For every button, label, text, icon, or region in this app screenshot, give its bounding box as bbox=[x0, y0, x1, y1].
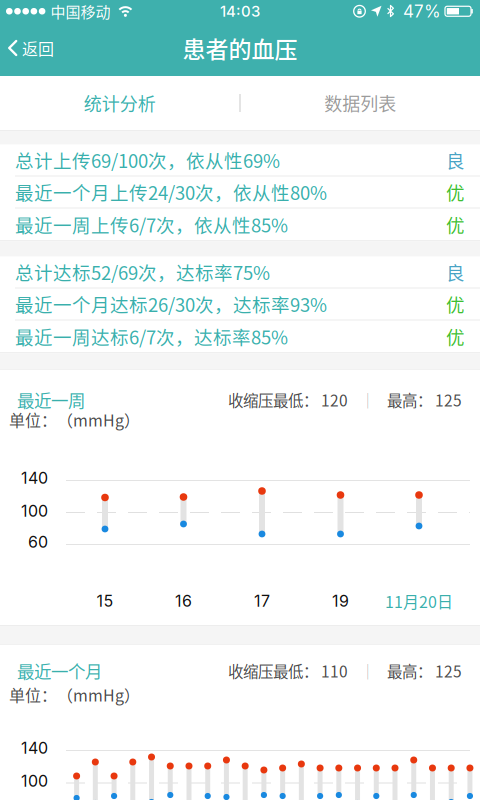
staticText: 140 bbox=[21, 738, 48, 758]
staticText: 14:03 bbox=[220, 2, 260, 20]
staticText: 最高： 125 bbox=[387, 659, 462, 682]
staticText: 15 bbox=[96, 591, 113, 611]
staticText: 19 bbox=[332, 591, 349, 611]
button[interactable]: 返回 bbox=[0, 28, 54, 76]
staticText: 良 bbox=[446, 259, 465, 285]
staticText: 数据列表 bbox=[324, 90, 396, 116]
staticText: 140 bbox=[21, 468, 48, 488]
staticText: 总计达标52/69次，达标率75% bbox=[15, 259, 270, 285]
staticText: 优 bbox=[446, 291, 465, 317]
staticText: 患者的血压 bbox=[182, 31, 297, 65]
staticText: 最近一周 bbox=[17, 387, 85, 412]
staticText: 优 bbox=[446, 323, 465, 350]
staticText: 优 bbox=[446, 179, 465, 205]
staticText: 最近一个月 bbox=[17, 658, 102, 683]
staticText: ｜ bbox=[360, 388, 375, 411]
staticText: 单位：（mmHg） bbox=[9, 408, 140, 431]
button[interactable]: 数据列表 bbox=[240, 76, 480, 130]
staticText: 返回 bbox=[22, 36, 54, 60]
button[interactable]: 统计分析 bbox=[0, 76, 239, 130]
staticText: 单位：（mmHg） bbox=[9, 683, 140, 706]
staticText: 最近一周达标6/7次，达标率85% bbox=[15, 323, 288, 350]
staticText: 60 bbox=[28, 532, 48, 552]
staticText: 100 bbox=[21, 501, 48, 521]
staticText: 100 bbox=[21, 771, 48, 791]
staticText: 优 bbox=[446, 211, 465, 238]
staticText: 11月20日 bbox=[385, 589, 453, 613]
staticText: 最高： 125 bbox=[387, 388, 462, 411]
staticText: ｜ bbox=[360, 659, 375, 682]
staticText: 16 bbox=[175, 591, 192, 611]
staticText: 最近一周上传6/7次，依从性85% bbox=[15, 211, 288, 238]
staticText: 收缩压最低： 120 bbox=[228, 388, 348, 411]
staticText: 17 bbox=[254, 591, 270, 611]
staticText: 收缩压最低： 110 bbox=[228, 659, 348, 682]
staticText: 统计分析 bbox=[84, 90, 156, 116]
staticText: 中国移动 bbox=[50, 0, 110, 22]
staticText: 47% bbox=[403, 1, 441, 22]
staticText: 最近一个月达标26/30次，达标率93% bbox=[15, 291, 327, 317]
staticText: 最近一个月上传24/30次，依从性80% bbox=[15, 179, 327, 205]
staticText: 总计上传69/100次，依从性69% bbox=[15, 147, 280, 173]
staticText: 良 bbox=[446, 147, 465, 173]
